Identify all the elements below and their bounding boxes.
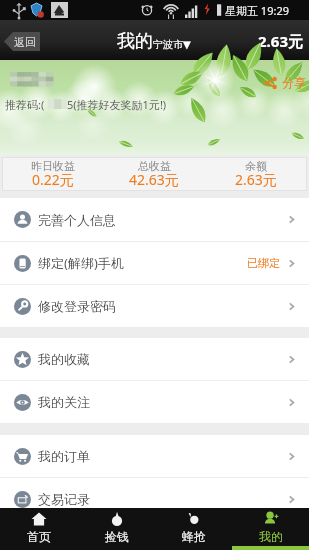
staticText: 首页 [27, 529, 51, 544]
staticText: 宁波市▼ [153, 38, 191, 51]
staticText: 交易记录 [38, 491, 90, 507]
button[interactable]: 蜂抢 [155, 508, 232, 550]
staticText: 5(推荐好友奖励1元!) [67, 97, 167, 112]
staticText: 我的关注 [38, 394, 90, 410]
staticText: 我的 [117, 30, 153, 53]
button[interactable]: 绑定(解绑)手机 [0, 242, 309, 284]
button[interactable]: 我的 [117, 30, 191, 53]
staticText: 我的订单 [38, 448, 90, 464]
button[interactable]: 我的收藏 [0, 338, 309, 380]
staticText: 绑定(解绑)手机 [38, 254, 124, 272]
staticText: 完善个人信息 [38, 212, 116, 228]
button[interactable]: 我的订单 [0, 435, 309, 477]
staticText: 返回 [14, 35, 36, 49]
staticText: 总收益 [138, 159, 171, 173]
button[interactable]: 分享 [262, 73, 306, 92]
staticText: 蜂抢 [182, 529, 206, 544]
staticText: 余额 [245, 159, 267, 173]
staticText: 我的收藏 [38, 351, 90, 367]
staticText: 42.63元 [129, 170, 179, 188]
staticText: 2.63元 [235, 170, 277, 188]
staticText: 捡钱 [105, 529, 129, 544]
staticText: 推荐码:( [5, 97, 45, 112]
button[interactable]: 捡钱 [78, 508, 155, 550]
staticText: 0.22元 [32, 170, 74, 188]
staticText: 分享 [282, 75, 306, 90]
staticText: 昨日收益 [31, 159, 75, 173]
button[interactable]: 交易记录 [0, 478, 309, 520]
button[interactable]: 修改登录密码 [0, 285, 309, 327]
staticText: 2.63元 [258, 31, 303, 51]
button[interactable]: 返回 [4, 32, 40, 51]
staticText: 修改登录密码 [38, 298, 116, 314]
button[interactable]: 我的关注 [0, 381, 309, 423]
button[interactable]: 我的 [232, 508, 309, 550]
staticText: 我的 [259, 529, 283, 544]
button[interactable]: 首页 [0, 508, 78, 550]
staticText: 星期五 19:29 [225, 3, 289, 18]
staticText: 已绑定 [247, 256, 280, 270]
button[interactable]: 完善个人信息 [0, 198, 309, 241]
